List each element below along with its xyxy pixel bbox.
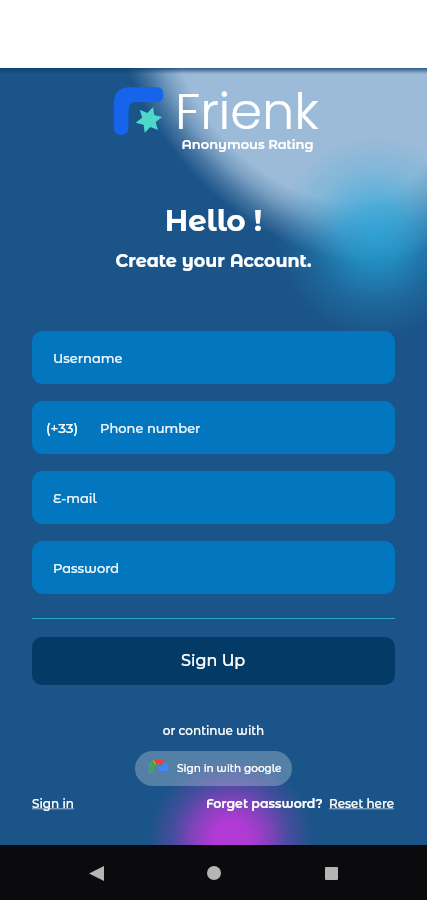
staticText: Frienk [175,75,319,146]
staticText: Create your Account. [0,250,427,271]
staticText: Password [53,560,120,576]
button[interactable]: Recent apps [309,851,353,895]
button[interactable]: Username [32,331,395,384]
staticText: Hello ! [0,203,427,238]
staticText: Username [53,350,123,366]
staticText: Forget password? [206,796,323,811]
button[interactable]: Sign in [32,796,75,811]
button[interactable]: Sign Up [32,637,395,685]
button[interactable]: Back [74,851,118,895]
button[interactable]: E-mail [32,471,395,524]
staticText: (+33) [46,420,79,436]
button[interactable]: Reset here [329,796,395,811]
button[interactable]: (+33) [32,401,395,454]
staticText: Sign Up [181,651,246,671]
button[interactable]: Password [32,541,395,594]
button[interactable]: Sign in with google [135,751,292,786]
staticText: Anonymous Rating [34,136,427,152]
staticText: Phone number [100,420,201,436]
staticText: Sign in with google [177,762,282,775]
staticText: E-mail [53,490,97,506]
button[interactable]: Home [192,851,236,895]
staticText: or continue with [0,723,427,738]
other: Sign in with google [149,759,168,778]
